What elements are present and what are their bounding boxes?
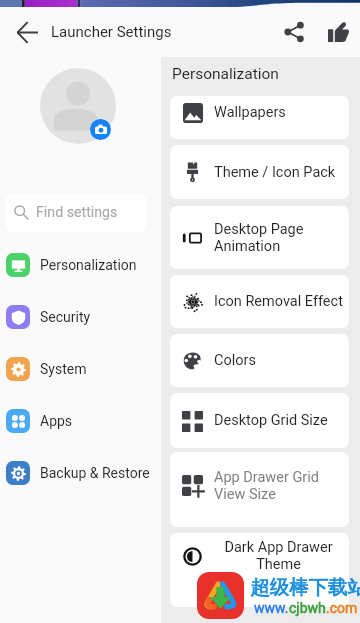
staticText: Security (40, 309, 91, 325)
staticText: App Drawer Grid View Size (214, 469, 348, 503)
button[interactable]: Theme / Icon Pack (170, 145, 349, 199)
button[interactable]: Icon Removal Effect (170, 275, 349, 328)
staticText: Desktop Page Animation (214, 221, 348, 255)
button[interactable]: Wallpapers (170, 96, 349, 139)
staticText: Find settings (36, 204, 118, 221)
button[interactable]: Apps (0, 395, 161, 447)
staticText: 超级棒下载站 (250, 575, 360, 600)
button[interactable]: Backup & Restore (0, 447, 161, 499)
staticText: Backup & Restore (40, 465, 150, 481)
button[interactable]: App Drawer Grid View Size (170, 452, 349, 527)
staticText: Theme / Icon Pack (214, 164, 348, 181)
button[interactable]: Share (276, 14, 312, 50)
button[interactable]: Security (0, 291, 161, 343)
staticText: Launcher Settings (51, 23, 172, 41)
staticText: Desktop Grid Size (214, 412, 348, 429)
button[interactable]: Change photo (90, 119, 111, 140)
staticText: cjbwh (289, 600, 326, 616)
staticText: Personalization (172, 65, 279, 83)
button[interactable]: Find settings (5, 193, 147, 232)
staticText: www. (254, 600, 289, 616)
button[interactable]: Back (8, 14, 44, 50)
button[interactable]: Dark App Drawer Theme (170, 533, 349, 607)
staticText: Apps (40, 413, 73, 429)
button[interactable]: Colors (170, 334, 349, 387)
button[interactable]: Personalization (0, 239, 161, 291)
staticText: Dark App Drawer Theme (224, 539, 333, 573)
button[interactable]: System (0, 343, 161, 395)
staticText: .com (326, 600, 358, 616)
staticText: Icon Removal Effect (214, 293, 348, 310)
staticText: System (40, 361, 87, 377)
button[interactable]: Desktop Page Animation (170, 206, 349, 269)
button[interactable]: Desktop Grid Size (170, 393, 349, 448)
staticText: Wallpapers (214, 104, 348, 121)
button[interactable]: Like (320, 14, 356, 50)
staticText: Colors (214, 352, 348, 369)
staticText: Personalization (40, 257, 137, 273)
